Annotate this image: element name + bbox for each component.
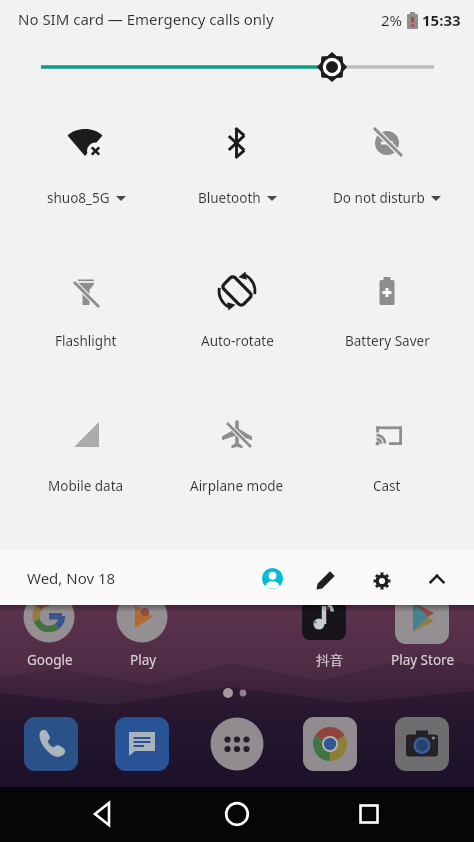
staticText: Flashlight [55,332,117,350]
staticText: Play [130,651,157,669]
staticText: 15:33 [422,10,461,30]
staticText: shuo8_5G [47,189,110,207]
button[interactable] [115,605,169,644]
button[interactable] [312,566,340,594]
button[interactable]: Battery Saver [313,256,461,353]
button[interactable] [395,605,449,644]
button[interactable]: Airplane mode [163,399,311,498]
staticText: Cast [373,477,401,495]
button[interactable]: Do not disturb [313,108,461,210]
button[interactable]: Flashlight [12,256,160,353]
staticText: Airplane mode [190,477,284,495]
button[interactable]: Bluetooth [163,108,311,210]
staticText: Battery Saver [345,332,430,350]
button[interactable]: shuo8_5G [12,108,160,210]
button[interactable]: Auto-rotate [163,256,311,353]
button[interactable] [262,568,283,589]
button[interactable] [217,794,257,834]
staticText: 抖音 [316,652,343,669]
staticText: Play Store [391,651,454,669]
staticText: Google [27,651,73,669]
button[interactable] [423,566,451,594]
button[interactable] [303,717,357,771]
button[interactable] [0,48,474,88]
button[interactable] [368,567,396,595]
button[interactable] [349,794,389,834]
button[interactable] [210,717,264,771]
button[interactable]: Wed, Nov 18 [27,568,116,588]
button[interactable]: Cast [313,399,461,498]
staticText: Mobile data [48,477,124,495]
button[interactable] [22,605,76,644]
staticText: Auto-rotate [201,332,274,350]
staticText: Do not disturb [333,189,425,207]
button[interactable] [297,605,351,645]
staticText: No SIM card — Emergency calls only [18,9,274,29]
button[interactable] [395,717,449,771]
staticText: Bluetooth [198,189,261,207]
button[interactable] [83,794,123,834]
staticText: 2% [381,10,403,30]
button[interactable]: Mobile data [12,399,160,498]
button[interactable] [115,717,169,771]
button[interactable] [24,717,78,771]
